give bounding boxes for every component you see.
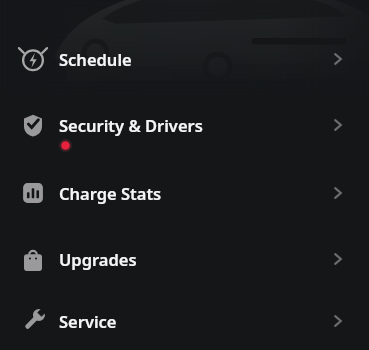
button[interactable]: Charge Stats — [0, 160, 369, 226]
button[interactable]: Schedule — [0, 28, 369, 90]
staticText: Schedule — [59, 48, 132, 70]
staticText: Upgrades — [59, 248, 137, 270]
button[interactable]: Upgrades — [0, 226, 369, 292]
staticText: Service — [59, 310, 117, 332]
button[interactable]: Service — [0, 292, 369, 350]
staticText: Charge Stats — [59, 182, 162, 204]
button[interactable]: Security & Drivers — [0, 90, 369, 160]
staticText: Security & Drivers — [59, 114, 203, 136]
